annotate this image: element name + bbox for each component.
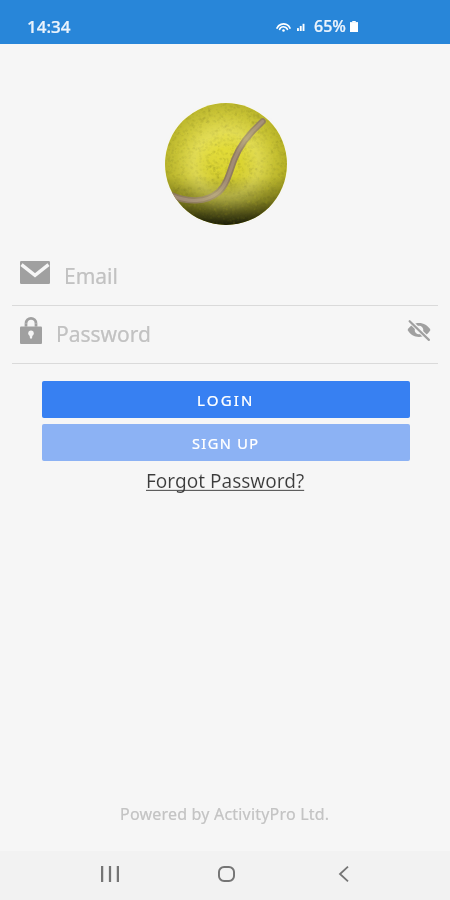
button[interactable]: Email xyxy=(0,243,450,301)
button[interactable]: Home xyxy=(168,851,285,897)
other: Email xyxy=(20,261,50,284)
button[interactable]: SIGN UP xyxy=(42,424,410,461)
staticText: Password xyxy=(56,320,151,349)
button[interactable]: Forgot Password? xyxy=(140,466,311,496)
button[interactable]: Show password xyxy=(406,319,432,341)
button[interactable]: Back xyxy=(285,851,402,897)
button[interactable]: LOGIN xyxy=(42,381,410,418)
button[interactable]: Recents xyxy=(52,851,168,897)
staticText: Forgot Password? xyxy=(146,468,305,494)
button[interactable]: Password xyxy=(0,301,450,359)
staticText: Powered by ActivityPro Ltd. xyxy=(120,803,330,825)
staticText: SIGN UP xyxy=(192,433,260,453)
staticText: LOGIN xyxy=(197,390,255,410)
staticText: Email xyxy=(64,262,118,291)
other: Password xyxy=(20,317,42,344)
staticText: 65% xyxy=(314,15,346,37)
staticText: 14:34 xyxy=(27,15,71,38)
